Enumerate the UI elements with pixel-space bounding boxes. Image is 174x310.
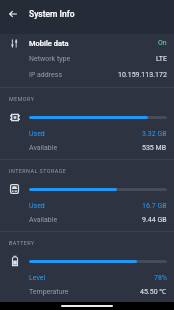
staticText: Used — [29, 202, 45, 210]
staticText: Level — [29, 274, 46, 282]
staticText: 9.44 GB — [142, 216, 167, 224]
staticText: Temperature — [29, 288, 69, 296]
staticText: System Info — [29, 9, 75, 19]
staticText: LTE — [156, 55, 167, 63]
button[interactable]: IP address — [0, 67, 174, 83]
staticText: 535 MB — [142, 144, 167, 152]
button[interactable]: Temperature — [0, 284, 174, 300]
staticText: Available — [29, 216, 58, 224]
staticText: 10.159.113.172 — [118, 71, 167, 79]
button[interactable]: Used — [0, 126, 174, 142]
button[interactable]: Network type — [0, 51, 174, 67]
staticText: Network type — [29, 55, 71, 63]
staticText: On — [158, 39, 167, 47]
button[interactable]: Available — [0, 212, 174, 228]
staticText: Available — [29, 144, 58, 152]
staticText: INTERNAL STORAGE — [9, 168, 67, 174]
staticText: 3.32 GB — [142, 130, 167, 138]
staticText: 45.50 ℃ — [140, 287, 167, 297]
staticText: IP address — [29, 71, 63, 79]
staticText: BATTERY — [9, 240, 35, 246]
staticText: Used — [29, 130, 45, 138]
staticText: MEMORY — [9, 96, 35, 102]
staticText: Mobile data — [29, 39, 69, 48]
button[interactable]: Available — [0, 140, 174, 156]
staticText: 16.7 GB — [142, 202, 167, 210]
button[interactable]: Used — [0, 198, 174, 214]
staticText: 78% — [154, 274, 167, 282]
button[interactable]: Mobile data — [0, 35, 174, 51]
button[interactable]: Level — [0, 270, 174, 286]
button[interactable]: Back — [0, 0, 25, 27]
